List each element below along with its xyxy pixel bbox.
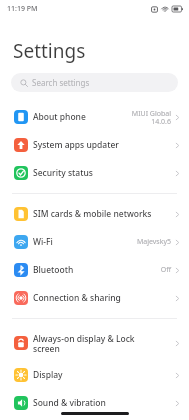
staticText: Settings [13, 38, 86, 64]
staticText: Always-on display & Lock screen [33, 333, 174, 354]
staticText: MIUI Global 14.0.6 [131, 109, 171, 126]
staticText: Bluetooth [33, 264, 160, 276]
staticText: Wi-Fi [33, 236, 136, 248]
staticText: Search settings [32, 77, 90, 88]
button[interactable]: Connection & sharing [0, 284, 189, 312]
button[interactable]: Security status [0, 159, 189, 187]
button[interactable]: Search settings [11, 73, 178, 92]
staticText: SIM cards & mobile networks [33, 208, 174, 220]
button[interactable]: System apps updater [0, 131, 189, 159]
staticText: Off [160, 265, 171, 275]
staticText: Connection & sharing [33, 292, 174, 304]
staticText: About phone [33, 111, 131, 123]
button[interactable]: Always-on display & Lock screen [0, 325, 189, 361]
button[interactable]: SIM cards & mobile networks [0, 200, 189, 228]
staticText: 11:19 PM [7, 4, 38, 14]
staticText: Display [33, 369, 174, 381]
button[interactable]: Wi-Fi [0, 228, 189, 256]
staticText: Majevsky5 [136, 237, 171, 247]
button[interactable]: About phone [0, 103, 189, 131]
button[interactable]: Bluetooth [0, 256, 189, 284]
staticText: Security status [33, 167, 174, 179]
staticText: System apps updater [33, 139, 174, 151]
button[interactable]: Sound & vibration [0, 389, 189, 417]
staticText: Sound & vibration [33, 397, 174, 409]
button[interactable]: Display [0, 361, 189, 389]
